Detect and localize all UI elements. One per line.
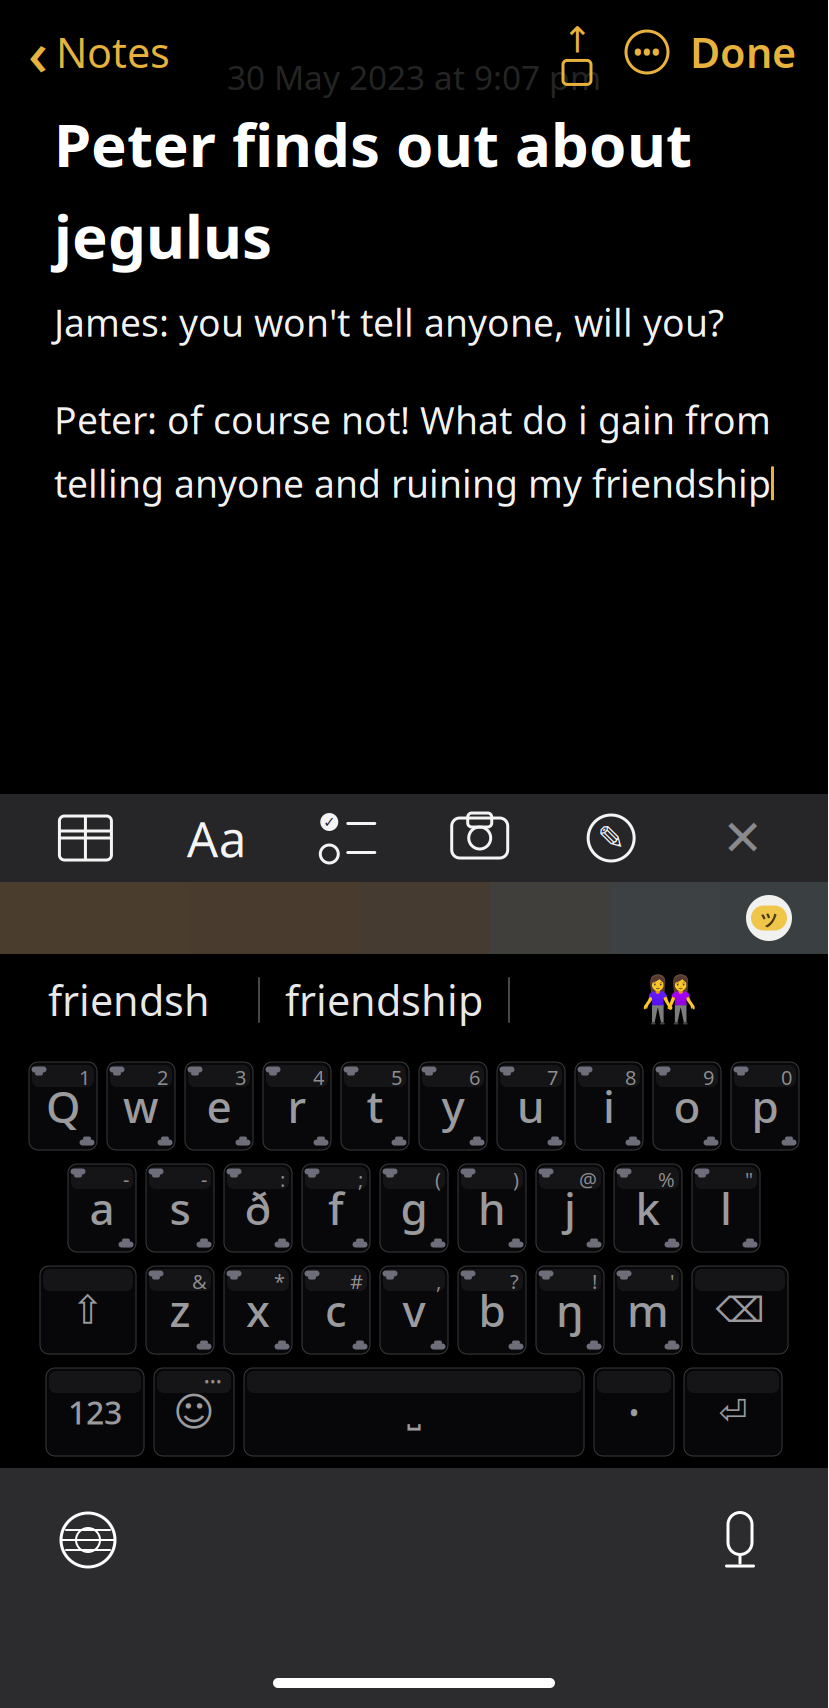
button[interactable]: x — [224, 1266, 292, 1354]
staticText: & — [192, 1268, 207, 1295]
staticText: t — [366, 1077, 383, 1135]
button[interactable]: t — [341, 1062, 409, 1150]
staticText: 7 — [547, 1064, 558, 1091]
staticText: Done — [690, 25, 796, 79]
staticText: b — [478, 1281, 505, 1339]
staticText: ✓ — [323, 814, 335, 830]
button[interactable]: v — [380, 1266, 448, 1354]
button[interactable]: Space — [244, 1368, 584, 1456]
button[interactable]: Emoji — [154, 1368, 234, 1456]
button[interactable]: e — [185, 1062, 253, 1150]
staticText: 2 — [157, 1064, 168, 1091]
staticText: p — [751, 1077, 778, 1135]
staticText: ⌫ — [715, 1290, 764, 1330]
staticText: v — [402, 1281, 425, 1339]
staticText: ŋ — [556, 1281, 584, 1339]
button[interactable]: Sticker — [738, 887, 800, 949]
staticText: Notes — [56, 25, 170, 79]
button[interactable]: o — [653, 1062, 721, 1150]
staticText: a — [89, 1179, 114, 1237]
button[interactable]: Delete — [692, 1266, 788, 1354]
staticText: g — [400, 1179, 427, 1237]
button[interactable]: More — [612, 19, 682, 85]
staticText: m — [627, 1281, 669, 1339]
button[interactable]: Share — [542, 19, 612, 85]
button[interactable]: p — [731, 1062, 799, 1150]
button[interactable]: Next keyboard — [42, 1494, 134, 1586]
staticText: ( — [435, 1166, 441, 1193]
staticText: 5 — [391, 1064, 402, 1091]
staticText: Q — [46, 1077, 80, 1135]
button[interactable]: Format — [171, 802, 263, 874]
staticText: ? — [510, 1268, 519, 1295]
button[interactable]: z — [146, 1266, 214, 1354]
staticText: y — [441, 1077, 464, 1135]
button[interactable]: Period — [594, 1368, 674, 1456]
button[interactable]: Table — [39, 802, 131, 874]
staticText: - — [123, 1166, 129, 1193]
staticText: ••• — [633, 37, 660, 67]
staticText: 8 — [625, 1064, 636, 1091]
button[interactable]: Close — [697, 802, 789, 874]
staticText: - — [201, 1166, 207, 1193]
button[interactable]: Markup — [565, 802, 657, 874]
staticText: ✎ — [597, 819, 625, 857]
button[interactable]: c — [302, 1266, 370, 1354]
button[interactable]: k — [614, 1164, 682, 1252]
button[interactable]: a — [68, 1164, 136, 1252]
button[interactable]: u — [497, 1062, 565, 1150]
staticText: : — [280, 1166, 285, 1193]
button[interactable]: Checklist — [302, 802, 394, 874]
staticText: % — [658, 1166, 675, 1193]
button[interactable]: ŋ — [536, 1266, 604, 1354]
staticText: • — [629, 1394, 639, 1430]
button[interactable]: Dictation — [694, 1494, 786, 1586]
staticText: ↑ — [562, 20, 592, 60]
button[interactable]: ‹ — [24, 5, 174, 99]
button[interactable]: ð — [224, 1164, 292, 1252]
staticText: Peter finds out about — [54, 104, 692, 184]
button[interactable]: Done — [682, 19, 804, 85]
staticText: j — [564, 1179, 576, 1237]
button[interactable]: l — [692, 1164, 760, 1252]
staticText: ' — [670, 1268, 675, 1295]
button[interactable]: s — [146, 1164, 214, 1252]
button[interactable]: r — [263, 1062, 331, 1150]
button[interactable]: j — [536, 1164, 604, 1252]
staticText: James: you won't tell anyone, will you? — [54, 297, 724, 347]
staticText: 6 — [469, 1064, 480, 1091]
button[interactable]: h — [458, 1164, 526, 1252]
staticText: c — [325, 1281, 347, 1339]
button[interactable]: Emoji suggestion — [510, 954, 828, 1046]
staticText: friendsh — [48, 973, 210, 1027]
button[interactable]: m — [614, 1266, 682, 1354]
button[interactable]: f — [302, 1164, 370, 1252]
staticText: 9 — [703, 1064, 714, 1091]
staticText: 0 — [781, 1064, 792, 1091]
staticText: r — [287, 1077, 306, 1135]
staticText: " — [745, 1166, 753, 1193]
staticText: ⏎ — [718, 1392, 747, 1432]
staticText: l — [720, 1179, 732, 1237]
button[interactable]: y — [419, 1062, 487, 1150]
staticText: x — [246, 1281, 270, 1339]
button[interactable]: friendship — [260, 954, 508, 1046]
button[interactable]: friendsh — [0, 954, 258, 1046]
staticText: jegulus — [54, 196, 272, 275]
button[interactable]: Numbers — [46, 1368, 144, 1456]
staticText: @ — [579, 1166, 597, 1193]
button[interactable]: Camera — [434, 802, 526, 874]
button[interactable]: Return — [684, 1368, 782, 1456]
button[interactable]: g — [380, 1164, 448, 1252]
button[interactable]: i — [575, 1062, 643, 1150]
staticText: s — [169, 1179, 190, 1237]
button[interactable]: b — [458, 1266, 526, 1354]
button[interactable]: w — [107, 1062, 175, 1150]
button[interactable]: Shift — [40, 1266, 136, 1354]
staticText: 30 May 2023 at 9:07 pm — [227, 55, 601, 99]
button[interactable]: Q — [29, 1062, 97, 1150]
staticText: Aa — [187, 805, 247, 871]
staticText: ••• — [204, 1372, 222, 1391]
staticText: 4 — [313, 1064, 324, 1091]
staticText: u — [517, 1077, 545, 1135]
